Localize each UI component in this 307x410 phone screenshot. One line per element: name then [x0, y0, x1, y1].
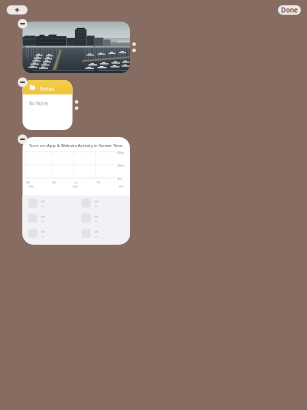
button[interactable]: Photos widget [22, 21, 130, 73]
button[interactable]: Add widget [7, 5, 27, 14]
staticText: Notes [40, 85, 55, 92]
staticText: 00 [26, 179, 30, 185]
staticText: 0m [117, 176, 123, 181]
staticText: 30m [117, 163, 125, 168]
staticText: 60m [117, 150, 125, 155]
staticText: No Notes [29, 101, 48, 107]
button[interactable]: Done [278, 5, 301, 15]
button[interactable]: Remove Photos widget [18, 19, 27, 28]
button[interactable]: Notes widget [22, 80, 72, 130]
button[interactable]: Screen Time widget [22, 137, 130, 244]
staticText: Turn on App & Website Activity in Screen… [29, 142, 123, 148]
staticText: 12 [74, 179, 78, 185]
staticText: 06 [52, 179, 56, 185]
button[interactable]: Remove Notes widget [18, 77, 27, 87]
staticText: Done [281, 6, 298, 14]
button[interactable]: Remove Screen Time widget [18, 134, 27, 144]
staticText: 18 [96, 179, 100, 185]
